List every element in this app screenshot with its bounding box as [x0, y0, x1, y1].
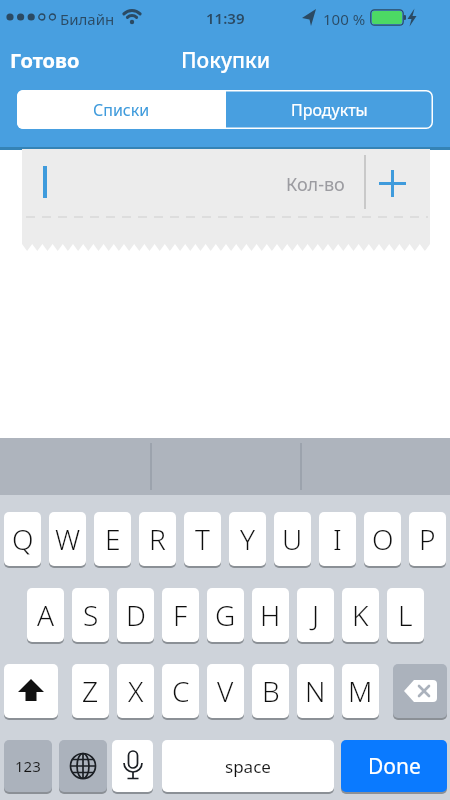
- staticText: 11:39: [206, 8, 245, 28]
- button[interactable]: I: [319, 512, 356, 566]
- button[interactable]: N: [297, 664, 334, 718]
- button[interactable]: [59, 740, 107, 792]
- staticText: Билайн: [60, 9, 115, 29]
- staticText: Done: [368, 752, 421, 781]
- button[interactable]: Done: [341, 740, 447, 792]
- button[interactable]: space: [162, 740, 334, 792]
- staticText: I: [333, 520, 342, 558]
- button[interactable]: Q: [4, 512, 41, 566]
- button[interactable]: C: [162, 664, 199, 718]
- staticText: K: [352, 596, 369, 634]
- button[interactable]: G: [207, 588, 244, 642]
- staticText: N: [305, 672, 326, 710]
- staticText: Кол-во: [286, 172, 345, 197]
- button[interactable]: M: [342, 664, 379, 718]
- staticText: M: [348, 672, 373, 710]
- button[interactable]: U: [274, 512, 311, 566]
- button[interactable]: J: [297, 588, 334, 642]
- button[interactable]: O: [364, 512, 401, 566]
- staticText: X: [128, 672, 144, 710]
- staticText: Готово: [10, 47, 80, 74]
- staticText: Продукты: [291, 99, 368, 121]
- staticText: A: [37, 596, 55, 634]
- button[interactable]: [4, 664, 58, 718]
- staticText: H: [260, 596, 281, 634]
- staticText: space: [225, 755, 271, 778]
- staticText: G: [215, 596, 236, 634]
- button[interactable]: L: [387, 588, 424, 642]
- staticText: R: [149, 520, 166, 558]
- button[interactable]: H: [252, 588, 289, 642]
- button[interactable]: A: [27, 588, 64, 642]
- button[interactable]: P: [409, 512, 446, 566]
- button[interactable]: T: [184, 512, 221, 566]
- button[interactable]: X: [117, 664, 154, 718]
- button[interactable]: E: [94, 512, 131, 566]
- button[interactable]: W: [49, 512, 86, 566]
- button[interactable]: [112, 740, 153, 792]
- button[interactable]: [22, 149, 430, 244]
- staticText: C: [172, 672, 190, 710]
- staticText: Z: [82, 672, 99, 710]
- staticText: 100 %: [323, 9, 366, 29]
- button[interactable]: V: [207, 664, 244, 718]
- staticText: W: [55, 520, 81, 558]
- button[interactable]: Продукты: [226, 90, 433, 129]
- staticText: E: [105, 520, 121, 558]
- button[interactable]: Z: [72, 664, 109, 718]
- button[interactable]: K: [342, 588, 379, 642]
- staticText: T: [195, 520, 210, 558]
- staticText: Покупки: [181, 46, 271, 74]
- button[interactable]: S: [72, 588, 109, 642]
- staticText: O: [372, 520, 394, 558]
- staticText: S: [83, 596, 99, 634]
- staticText: U: [282, 520, 303, 558]
- staticText: L: [398, 596, 413, 634]
- staticText: F: [173, 596, 188, 634]
- button[interactable]: Y: [229, 512, 266, 566]
- button[interactable]: 123: [4, 740, 52, 792]
- button[interactable]: [393, 664, 447, 718]
- staticText: Q: [12, 520, 34, 558]
- button[interactable]: R: [139, 512, 176, 566]
- button[interactable]: B: [252, 664, 289, 718]
- button[interactable]: F: [162, 588, 199, 642]
- button[interactable]: [378, 169, 407, 198]
- staticText: Y: [240, 520, 255, 558]
- staticText: J: [312, 596, 320, 634]
- staticText: Списки: [93, 99, 150, 121]
- staticText: P: [419, 520, 436, 558]
- staticText: D: [126, 596, 146, 634]
- staticText: 123: [15, 756, 41, 776]
- button[interactable]: D: [117, 588, 154, 642]
- staticText: V: [217, 672, 234, 710]
- staticText: B: [262, 672, 280, 710]
- button[interactable]: Списки: [17, 90, 226, 129]
- button[interactable]: Готово: [10, 46, 90, 74]
